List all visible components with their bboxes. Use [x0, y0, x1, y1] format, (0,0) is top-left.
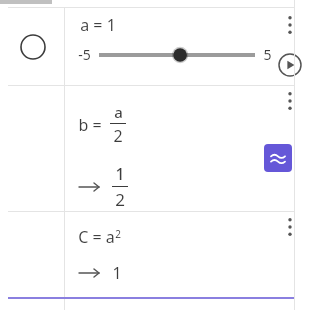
button[interactable]: Toggle approximate value — [264, 144, 292, 172]
button[interactable]: More options for C — [280, 214, 300, 240]
button[interactable]: More options for b — [280, 88, 300, 114]
staticText: 1 — [115, 163, 125, 185]
staticText: 1 — [112, 262, 122, 284]
staticText: 2 — [115, 227, 121, 241]
staticText: b = — [78, 114, 102, 136]
button[interactable]: Toggle visibility of a — [0, 8, 65, 85]
staticText: 2 — [115, 188, 125, 211]
staticText: 5 — [263, 45, 272, 64]
button[interactable]: Slider for a — [99, 46, 255, 64]
staticText: a — [114, 102, 123, 122]
button[interactable]: More options for a — [280, 12, 300, 38]
staticText: C = a — [78, 226, 115, 248]
staticText: a = 1 — [80, 14, 116, 36]
staticText: 2 — [113, 125, 123, 147]
staticText: -5 — [78, 45, 91, 64]
button[interactable]: Animate a — [278, 53, 302, 77]
